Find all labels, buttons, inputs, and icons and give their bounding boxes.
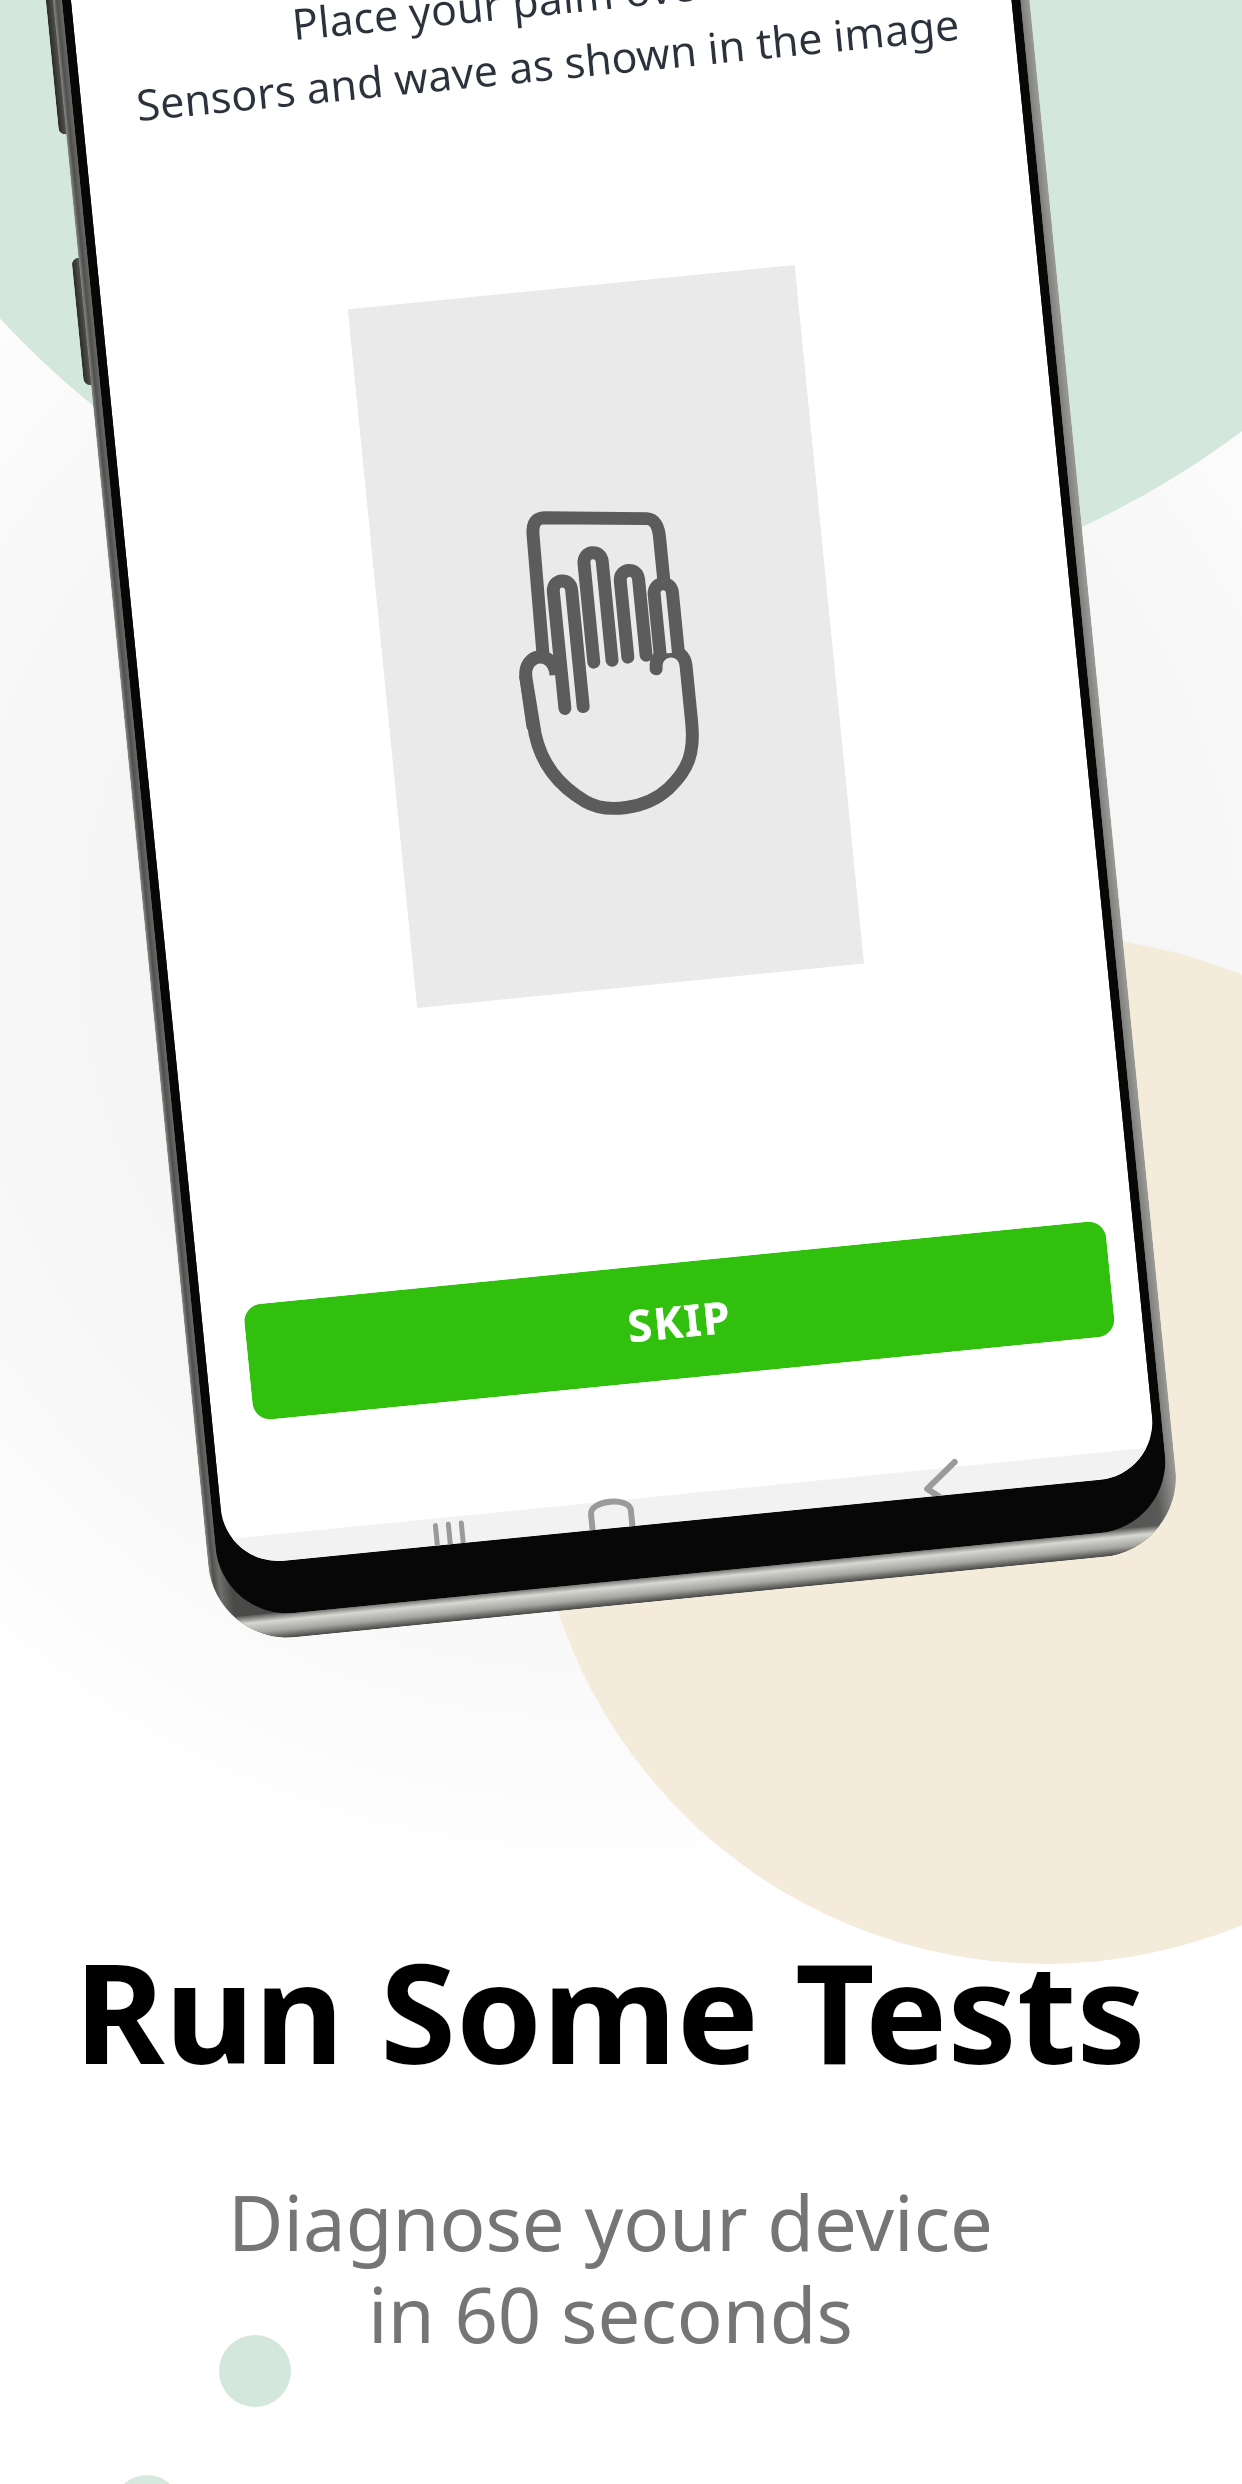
staticText: Run Some Tests — [74, 1916, 1146, 2104]
button[interactable]: SKIP — [243, 1220, 1116, 1421]
staticText: SKIP — [625, 1285, 734, 1355]
staticText: Place your palm over the Sensors and wav… — [72, 0, 1016, 139]
other: Wave hand over sensors — [498, 487, 708, 823]
staticText: Diagnose your device in 60 seconds — [228, 2170, 993, 2365]
